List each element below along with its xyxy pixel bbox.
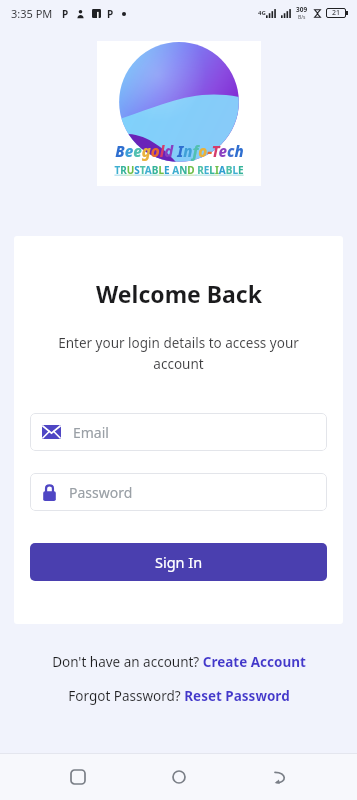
staticText: Beegold Info-Tech — [115, 141, 244, 161]
button[interactable]: Forgot Password? Reset Password — [62, 684, 296, 708]
button[interactable]: Home — [157, 755, 201, 799]
staticText: 4G — [258, 9, 266, 17]
staticText: Password — [69, 483, 133, 502]
staticText: TRUSTABLE AND RELIABLE — [114, 163, 244, 177]
staticText: P — [62, 7, 69, 21]
staticText: 309 — [296, 5, 308, 14]
staticText: Don't have an account? Create Account — [52, 653, 306, 671]
staticText: B/s — [298, 14, 306, 21]
button[interactable]: Don't have an account? Create Account — [46, 650, 312, 674]
button[interactable]: Password — [30, 473, 327, 511]
staticText: Forgot Password? Reset Password — [68, 687, 290, 705]
button[interactable]: Back — [257, 755, 301, 799]
button[interactable]: Recent apps — [56, 755, 100, 799]
staticText: 21 — [332, 8, 341, 18]
staticText: Enter your login details to access your … — [36, 334, 321, 373]
staticText: Welcome Back — [96, 278, 262, 309]
button[interactable]: Sign In — [30, 543, 327, 581]
staticText: Sign In — [155, 552, 203, 572]
staticText: 3:35 PM — [11, 6, 53, 21]
staticText: Email — [73, 423, 109, 442]
staticText: P — [107, 7, 114, 21]
button[interactable]: Email — [30, 413, 327, 451]
